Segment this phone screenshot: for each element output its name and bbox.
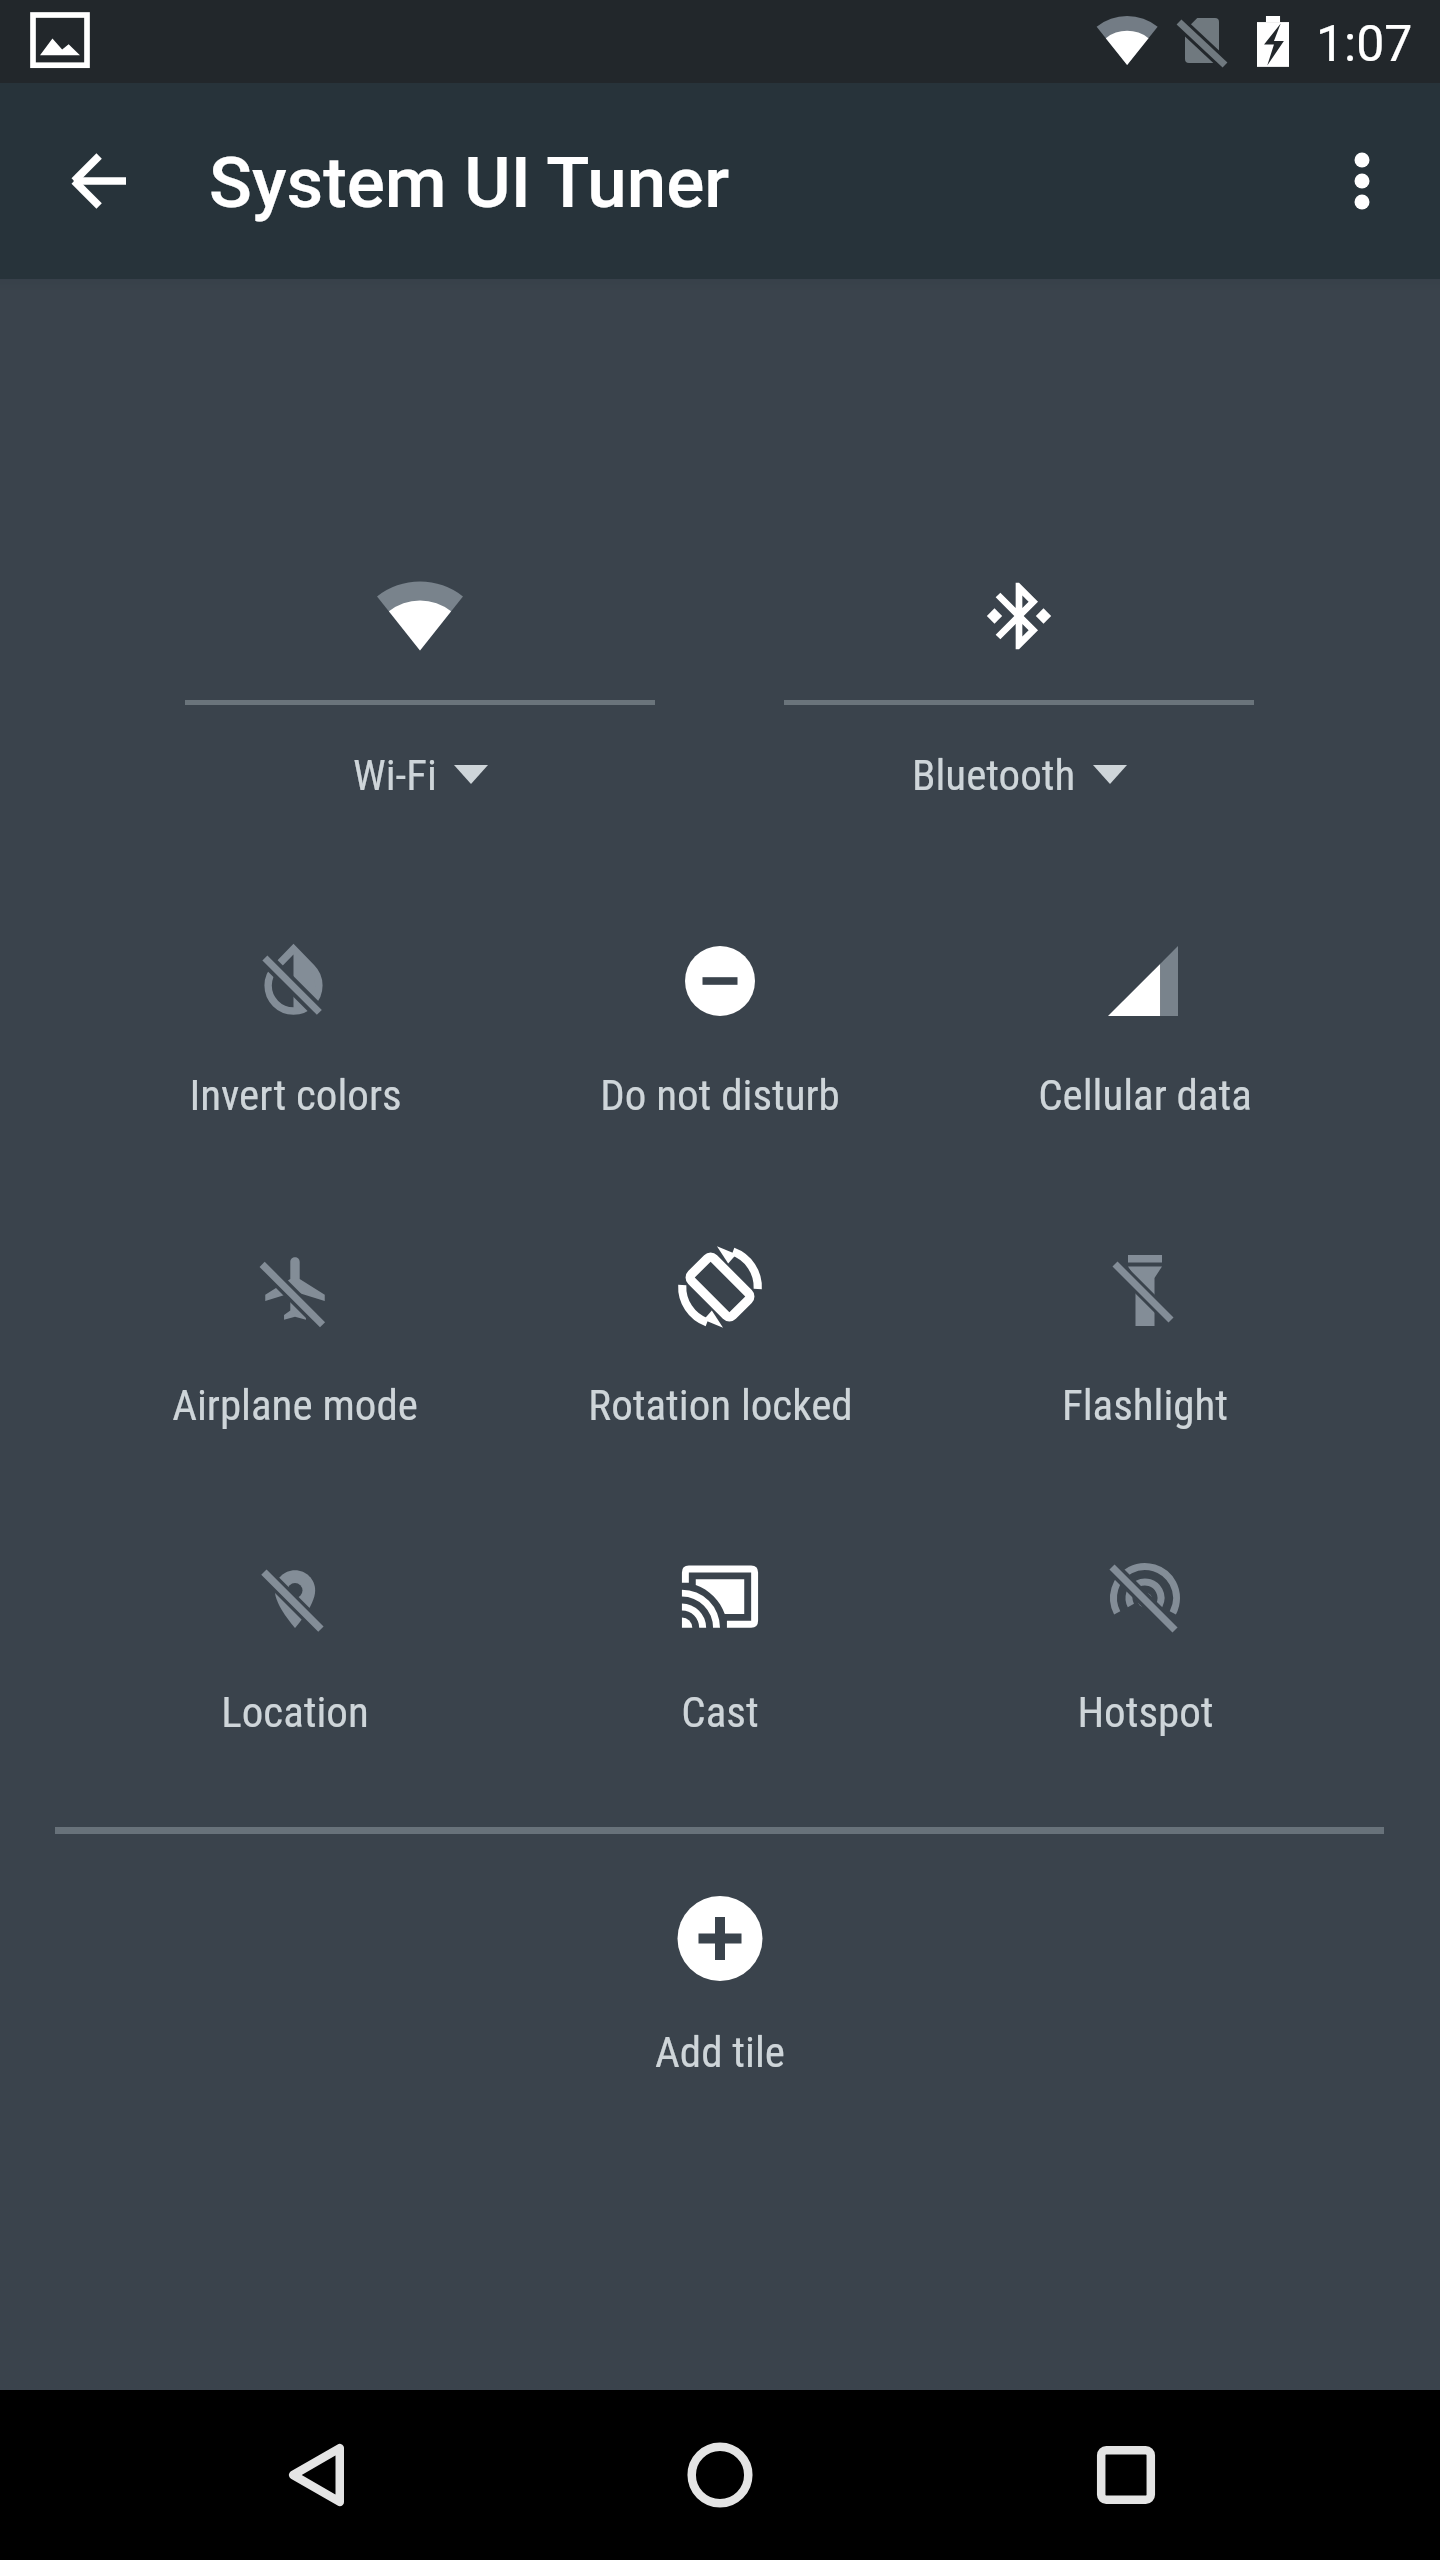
button[interactable]: Wi-Fi — [150, 500, 690, 830]
button[interactable]: Location — [85, 1488, 505, 1778]
button[interactable]: Add tile — [560, 1858, 880, 2098]
staticText: System UI Tuner — [209, 141, 730, 224]
staticText: Invert colors — [189, 1070, 402, 1120]
button[interactable]: Cast — [510, 1488, 930, 1778]
button[interactable]: Flashlight — [935, 1181, 1355, 1471]
staticText: Location — [221, 1687, 369, 1737]
button[interactable]: Back — [196, 2390, 436, 2560]
staticText: Flashlight — [1062, 1380, 1228, 1430]
button[interactable]: More options — [1306, 125, 1418, 237]
button[interactable]: Do not disturb — [510, 871, 930, 1161]
staticText: Rotation locked — [588, 1380, 853, 1430]
staticText: 1:07 — [1316, 15, 1413, 74]
staticText: Do not disturb — [600, 1070, 840, 1120]
button[interactable]: Bluetooth — [749, 500, 1289, 830]
button[interactable]: Hotspot — [935, 1488, 1355, 1778]
button[interactable]: Cellular data — [935, 871, 1355, 1161]
staticText: Hotspot — [1077, 1687, 1214, 1737]
staticText: Add tile — [655, 2027, 785, 2077]
staticText: Cast — [681, 1687, 759, 1737]
staticText: Airplane mode — [172, 1380, 418, 1430]
staticText: Wi-Fi — [353, 750, 437, 800]
button[interactable]: Rotation locked — [510, 1181, 930, 1471]
button[interactable]: Invert colors — [85, 871, 505, 1161]
staticText: Cellular data — [1038, 1070, 1252, 1120]
button[interactable]: Home — [600, 2390, 840, 2560]
button[interactable]: Navigate up — [42, 125, 154, 237]
button[interactable]: Recents — [1006, 2390, 1246, 2560]
button[interactable]: Airplane mode — [85, 1181, 505, 1471]
staticText: Bluetooth — [912, 750, 1076, 800]
